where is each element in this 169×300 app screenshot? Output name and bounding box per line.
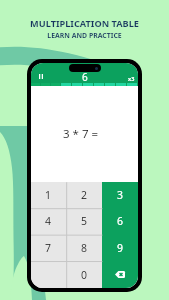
staticText: 2 — [81, 188, 88, 202]
button[interactable]: 6 — [102, 208, 138, 234]
staticText: 7 — [45, 241, 52, 255]
staticText: 8 — [81, 241, 88, 255]
staticText: x3 — [128, 75, 135, 82]
button[interactable]: Pause — [35, 71, 46, 82]
button[interactable]: 2 — [66, 182, 102, 208]
staticText: 9 — [117, 241, 124, 255]
staticText: 6 — [82, 70, 88, 84]
staticText: 3 * 7 = — [63, 126, 99, 142]
button[interactable]: 0 — [66, 261, 102, 288]
button[interactable]: 9 — [102, 234, 138, 261]
button[interactable]: 4 — [31, 208, 66, 234]
button[interactable]: 7 — [31, 234, 66, 261]
staticText: MULTIPLICATION TABLE — [30, 17, 139, 30]
button[interactable] — [31, 261, 66, 288]
staticText: 6 — [117, 214, 124, 228]
staticText: 0 — [81, 268, 88, 282]
button[interactable]: Backspace — [102, 261, 138, 288]
button[interactable]: 8 — [66, 234, 102, 261]
staticText: 1 — [45, 188, 52, 202]
button[interactable]: 1 — [31, 182, 66, 208]
staticText: LEARN AND PRACTICE — [47, 31, 122, 40]
staticText: 5 — [81, 214, 88, 228]
staticText: 4 — [45, 214, 52, 228]
staticText: 3 — [117, 188, 124, 202]
button[interactable]: 5 — [66, 208, 102, 234]
button[interactable]: 3 — [102, 182, 138, 208]
